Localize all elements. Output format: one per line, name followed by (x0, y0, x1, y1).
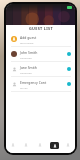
staticText: Emergency Cont (20, 80, 47, 85)
staticText: GUEST LIST (29, 26, 53, 31)
button[interactable]: Jane Smith (6, 62, 75, 77)
button[interactable]: Settings (61, 137, 75, 153)
button[interactable]: John Smith (6, 47, 75, 62)
staticText: Add guest (20, 35, 37, 40)
button[interactable]: Events (33, 137, 47, 153)
button[interactable]: Add guest (6, 32, 75, 47)
staticText: John Smith (20, 50, 38, 55)
staticText: tap to invite (20, 41, 34, 44)
button[interactable]: Search (19, 137, 33, 153)
button[interactable]: Emergency Cont (6, 77, 75, 92)
button[interactable]: Guests (47, 137, 61, 153)
button[interactable]: Home (6, 137, 19, 153)
staticText: on call (20, 86, 28, 89)
staticText: Jane Smith (20, 65, 37, 70)
staticText: confirmed (20, 71, 32, 74)
staticText: confirmed (20, 56, 32, 59)
